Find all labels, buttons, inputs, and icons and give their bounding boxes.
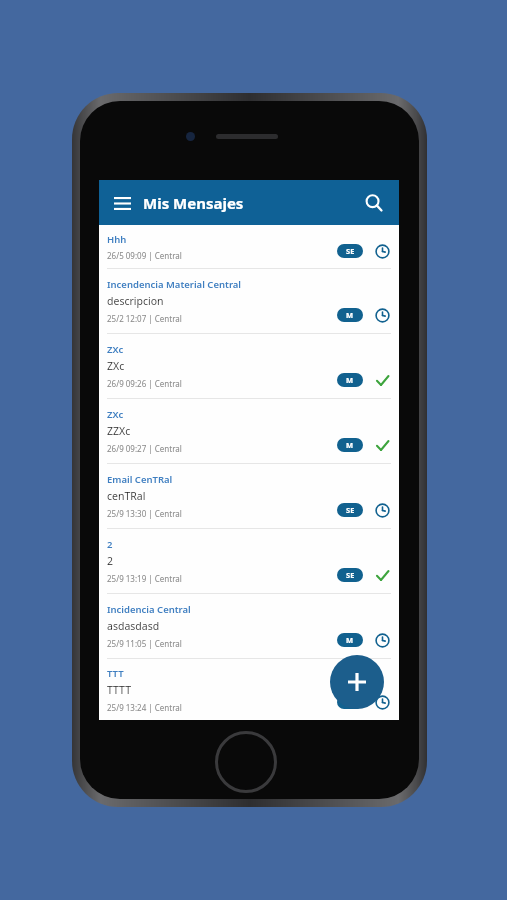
button[interactable]: Email CenTRal — [99, 464, 399, 528]
staticText: Email CenTRal — [107, 473, 173, 486]
staticText: 25/9 11:05 | Central — [107, 638, 182, 649]
other: Pendiente — [373, 631, 391, 649]
staticText: Hhh — [107, 233, 127, 246]
button[interactable]: Hhh — [99, 225, 399, 268]
button[interactable]: Buscar — [357, 186, 391, 220]
staticText: descripcion — [107, 294, 164, 308]
staticText: cenTRal — [107, 489, 146, 503]
staticText: SE — [346, 246, 355, 256]
button[interactable]: Incendencia Material Central — [99, 269, 399, 333]
staticText: 25/2 12:07 | Central — [107, 313, 182, 324]
other: Enviado — [373, 436, 391, 454]
staticText: SE — [346, 570, 355, 580]
button[interactable]: TTT — [99, 659, 399, 720]
other: Pendiente — [373, 306, 391, 324]
button[interactable]: Menú — [104, 185, 140, 221]
staticText: Mis Mensajes — [143, 193, 244, 213]
staticText: 26/9 09:26 | Central — [107, 378, 182, 389]
other: Pendiente — [373, 501, 391, 519]
staticText: ZXc — [107, 359, 125, 373]
staticText: 2 — [107, 554, 114, 568]
staticText: ZXc — [107, 408, 124, 421]
staticText: TTT — [107, 667, 124, 680]
staticText: TTTT — [107, 683, 131, 697]
other: Enviado — [373, 371, 391, 389]
other: Enviado — [373, 566, 391, 584]
button[interactable]: ZXc — [99, 334, 399, 398]
staticText: ZXc — [107, 343, 124, 356]
staticText: ZZXc — [107, 424, 131, 438]
staticText: M — [346, 635, 354, 645]
staticText: SE — [346, 505, 355, 515]
staticText: 25/9 13:24 | Central — [107, 702, 182, 713]
other: Pendiente — [373, 242, 391, 260]
staticText: asdasdasd — [107, 619, 160, 633]
staticText: M — [346, 310, 354, 320]
staticText: 26/5 09:09 | Central — [107, 250, 182, 261]
staticText: 25/9 13:30 | Central — [107, 508, 182, 519]
staticText: 2 — [107, 538, 113, 551]
staticText: Incendencia Material Central — [107, 278, 242, 291]
staticText: M — [346, 440, 354, 450]
staticText: M — [346, 375, 354, 385]
staticText: 25/9 13:19 | Central — [107, 573, 182, 584]
other: Pendiente — [373, 693, 391, 711]
button[interactable]: Nuevo mensaje — [330, 655, 384, 709]
button[interactable]: 2 — [99, 529, 399, 593]
button[interactable]: ZXc — [99, 399, 399, 463]
staticText: 26/9 09:27 | Central — [107, 443, 182, 454]
staticText: Incidencia Central — [107, 603, 191, 616]
button[interactable]: Incidencia Central — [99, 594, 399, 658]
